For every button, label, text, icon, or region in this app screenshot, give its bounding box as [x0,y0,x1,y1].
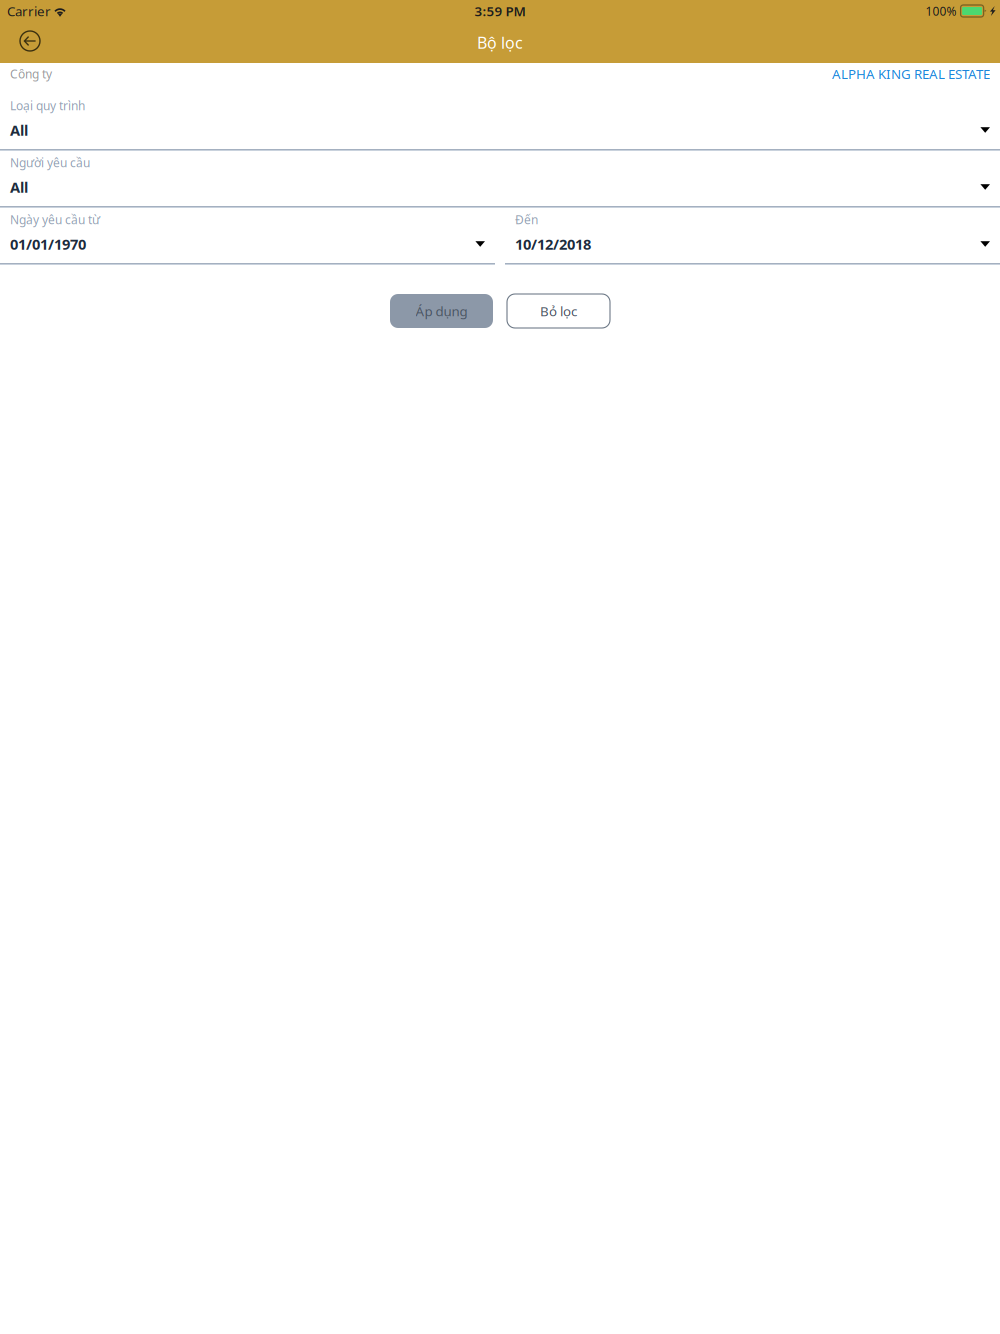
staticText: All [10,177,28,197]
button[interactable]: ALPHA KING REAL ESTATE [832,65,990,83]
staticText: Áp dụng [415,302,467,320]
button[interactable]: Áp dụng [390,294,493,328]
button[interactable]: Ngày yêu cầu từ [0,208,495,265]
button[interactable]: Đến [505,208,1000,265]
button[interactable]: Bỏ lọc [507,294,610,328]
staticText: Carrier [7,2,51,20]
staticText: 01/01/1970 [10,234,86,254]
staticText: Bỏ lọc [540,302,577,320]
staticText: 100% [926,3,957,19]
staticText: 10/12/2018 [515,234,591,254]
staticText: Công ty [10,66,52,82]
button[interactable]: Loại quy trình [0,94,1000,151]
staticText: Loại quy trình [10,97,85,113]
staticText: ALPHA KING REAL ESTATE [832,65,990,83]
staticText: All [10,120,28,140]
button[interactable]: Back [10,22,50,63]
button[interactable]: Người yêu cầu [0,151,1000,208]
staticText: Ngày yêu cầu từ [10,211,100,227]
staticText: Đến [515,211,538,227]
staticText: 3:59 PM [474,2,525,20]
staticText: Bộ lọc [477,32,523,53]
staticText: Người yêu cầu [10,154,90,170]
